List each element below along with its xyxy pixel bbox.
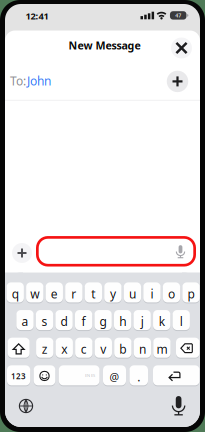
staticText: To: <box>10 73 26 89</box>
staticText: EN ES <box>85 373 95 378</box>
button[interactable]: p <box>182 282 200 303</box>
staticText: 12:41 <box>25 10 48 22</box>
button[interactable] <box>8 338 30 359</box>
staticText: . <box>137 369 140 385</box>
staticText: 123 <box>11 371 26 381</box>
button[interactable] <box>171 397 187 413</box>
staticText: j <box>141 313 144 329</box>
staticText: l <box>180 313 183 329</box>
staticText: s <box>41 313 47 329</box>
staticText: p <box>187 286 194 302</box>
staticText: c <box>81 341 87 357</box>
button[interactable]: g <box>94 310 112 331</box>
button[interactable] <box>36 236 196 267</box>
staticText: w <box>30 286 39 302</box>
staticText: d <box>61 313 68 329</box>
button[interactable]: r <box>65 282 82 303</box>
button[interactable] <box>171 37 192 58</box>
button[interactable]: i <box>143 282 161 303</box>
staticText: q <box>12 286 19 302</box>
staticText: y <box>110 286 116 302</box>
button[interactable]: z <box>36 338 53 359</box>
staticText: v <box>100 341 106 357</box>
button[interactable]: 123 <box>7 365 30 386</box>
staticText: k <box>159 313 165 329</box>
button[interactable]: x <box>56 338 73 359</box>
staticText: t <box>91 286 95 302</box>
button[interactable]: k <box>153 310 170 331</box>
staticText: r <box>71 286 76 302</box>
staticText: @ <box>109 370 119 384</box>
button[interactable]: c <box>75 338 92 359</box>
staticText: New Message <box>68 38 140 52</box>
button[interactable]: b <box>114 338 131 359</box>
button[interactable]: h <box>114 310 131 331</box>
button[interactable]: j <box>133 310 151 331</box>
button[interactable]: @ <box>103 365 126 386</box>
staticText: h <box>119 313 126 329</box>
staticText: f <box>82 313 86 329</box>
button[interactable]: d <box>55 310 73 331</box>
button[interactable]: m <box>153 338 171 359</box>
button[interactable] <box>167 71 188 92</box>
button[interactable]: e <box>46 282 63 303</box>
staticText: 47 <box>175 12 181 19</box>
button[interactable] <box>12 243 32 263</box>
staticText: i <box>150 286 153 302</box>
staticText: x <box>61 341 67 357</box>
staticText: u <box>129 286 136 302</box>
staticText: b <box>119 341 126 357</box>
staticText: a <box>21 313 28 329</box>
staticText: n <box>139 341 146 357</box>
button[interactable]: a <box>16 310 34 331</box>
button[interactable]: y <box>104 282 121 303</box>
staticText: John <box>27 73 51 89</box>
button[interactable]: t <box>85 282 102 303</box>
button[interactable]: To: <box>5 68 165 94</box>
button[interactable]: w <box>26 282 43 303</box>
button[interactable]: f <box>75 310 92 331</box>
staticText: g <box>100 313 107 329</box>
button[interactable] <box>34 365 55 386</box>
button[interactable]: l <box>173 310 190 331</box>
button[interactable] <box>153 365 199 386</box>
button[interactable]: n <box>134 338 151 359</box>
button[interactable] <box>176 338 199 359</box>
button[interactable]: s <box>36 310 53 331</box>
staticText: m <box>156 341 167 357</box>
staticText: o <box>168 286 175 302</box>
button[interactable]: o <box>163 282 180 303</box>
button[interactable]: v <box>95 338 112 359</box>
staticText: e <box>51 286 58 302</box>
button[interactable] <box>18 398 34 414</box>
button[interactable]: EN ES <box>59 365 99 386</box>
staticText: z <box>42 341 48 357</box>
button[interactable]: q <box>7 282 24 303</box>
button[interactable]: u <box>124 282 141 303</box>
button[interactable]: . <box>129 365 148 386</box>
